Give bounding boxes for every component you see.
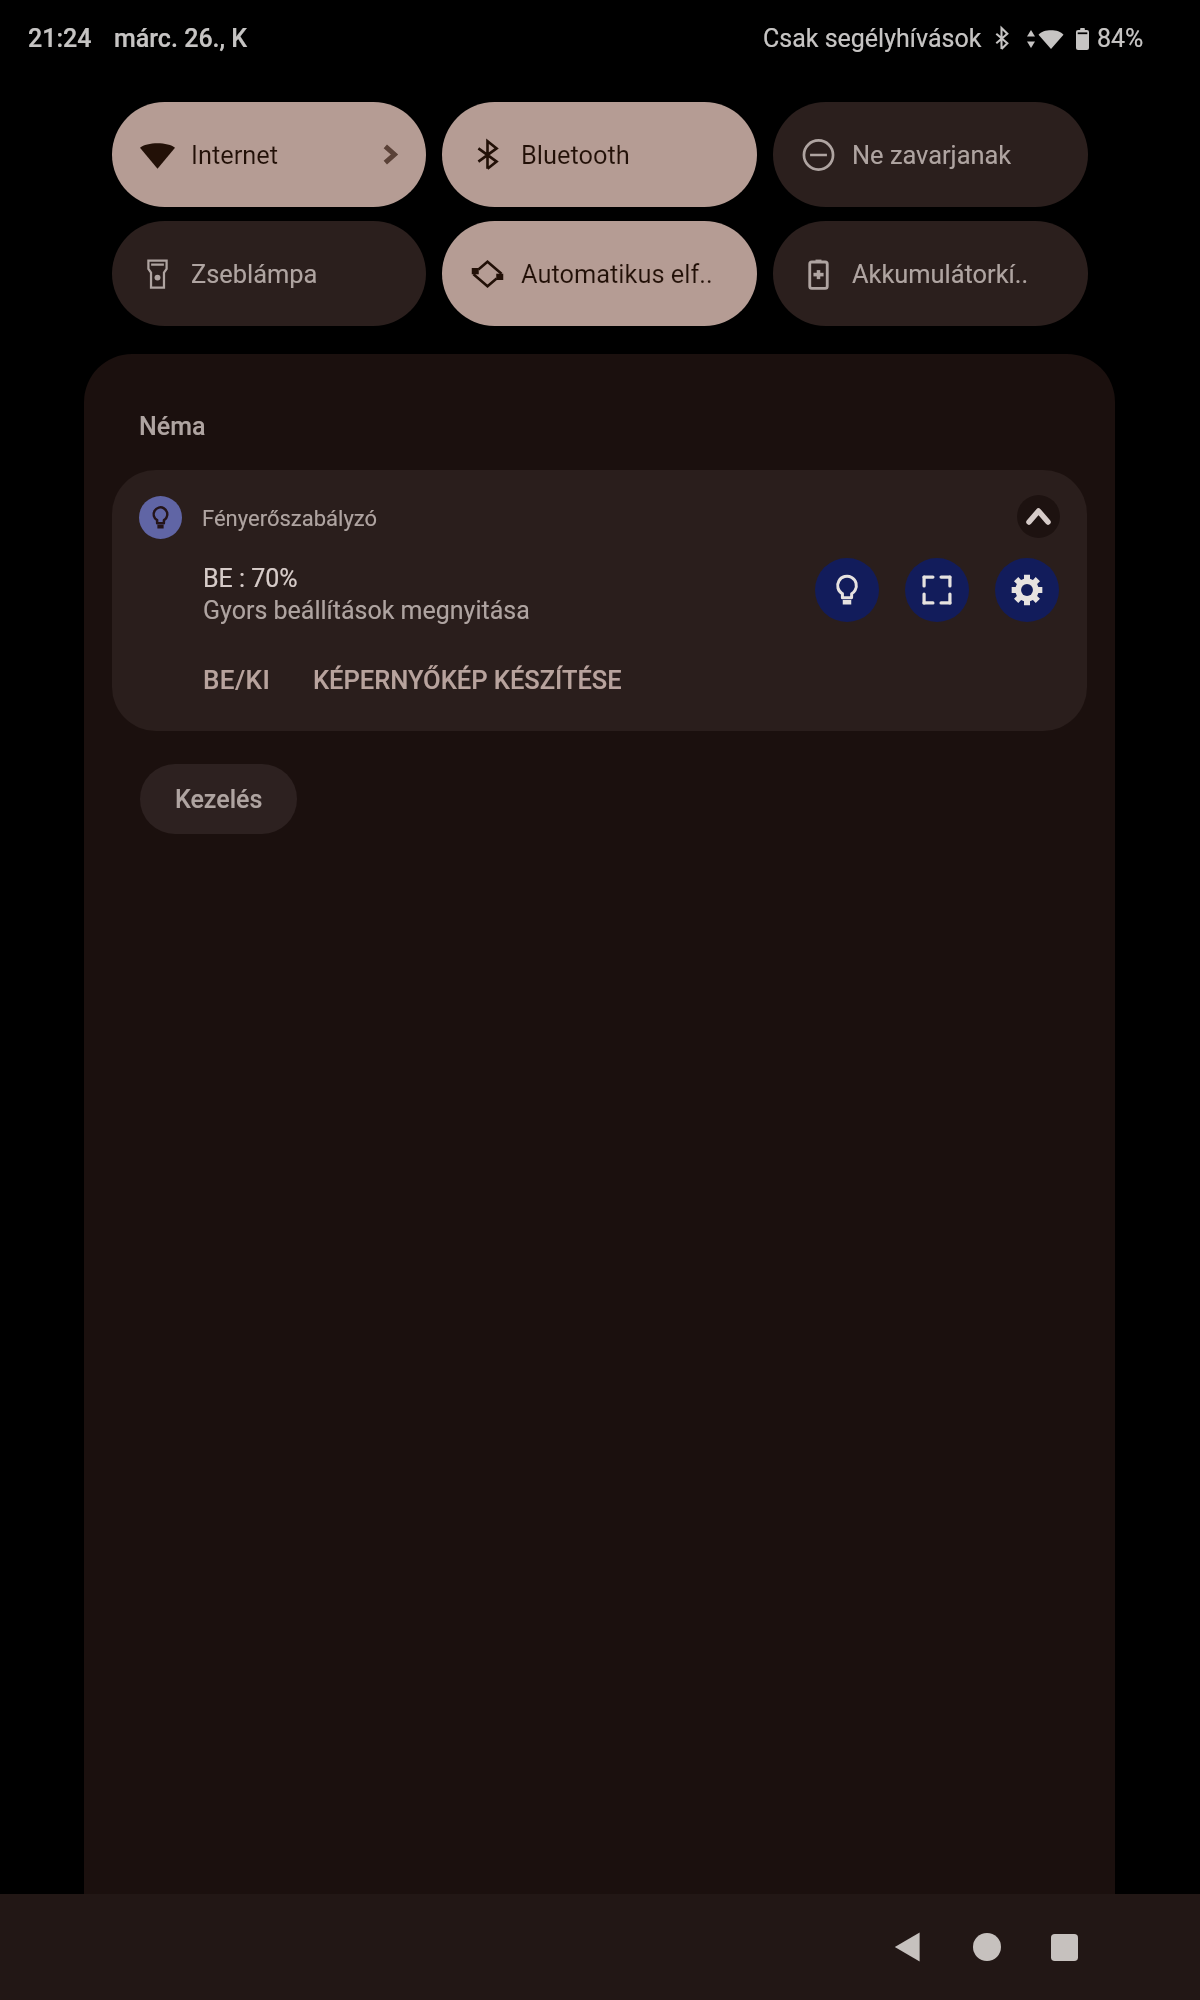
staticText: KÉPERNYŐKÉP KÉSZÍTÉSE — [313, 665, 622, 695]
button[interactable]: Fényerőszabályzó — [112, 470, 1087, 731]
button[interactable]: Képernyőkép — [905, 558, 969, 622]
staticText: Gyors beállítások megnyitása — [203, 596, 530, 625]
staticText: Kezelés — [175, 785, 263, 814]
staticText: BE/KI — [203, 665, 271, 695]
button[interactable]: Összecsukás — [1017, 495, 1060, 538]
button[interactable]: Akkumulátorkí.. — [773, 221, 1088, 326]
button[interactable]: Ne zavarjanak — [773, 102, 1088, 207]
staticText: Automatikus elf.. — [521, 259, 726, 289]
button[interactable]: Kezelés — [140, 764, 297, 834]
button[interactable]: KÉPERNYŐKÉP KÉSZÍTÉSE — [305, 657, 630, 703]
staticText: BE : 70% — [203, 564, 298, 593]
staticText: Néma — [139, 412, 206, 441]
button[interactable]: Fényerő — [815, 558, 879, 622]
button[interactable]: BE/KI — [195, 657, 279, 703]
staticText: Internet — [191, 140, 384, 170]
staticText: Fényerőszabályzó — [202, 506, 378, 532]
button[interactable]: Automatikus elf.. — [442, 221, 757, 326]
button[interactable]: Áttekintés — [1022, 1905, 1106, 1989]
staticText: márc. 26., K — [114, 24, 248, 53]
staticText: Akkumulátorkí.. — [852, 259, 1057, 289]
staticText: 21:24 — [28, 24, 92, 53]
staticText: Zseblámpa — [191, 259, 395, 289]
button[interactable]: Vissza — [865, 1905, 949, 1989]
staticText: Csak segélyhívások — [763, 24, 982, 53]
button[interactable]: Kezdőképernyő — [945, 1905, 1029, 1989]
button[interactable]: Internet — [112, 102, 426, 207]
button[interactable]: Zseblámpa — [112, 221, 426, 326]
staticText: Bluetooth — [521, 140, 726, 170]
button[interactable]: Bluetooth — [442, 102, 757, 207]
staticText: Ne zavarjanak — [852, 140, 1057, 170]
staticText: 84% — [1097, 24, 1144, 53]
button[interactable]: Beállítások — [995, 558, 1059, 622]
